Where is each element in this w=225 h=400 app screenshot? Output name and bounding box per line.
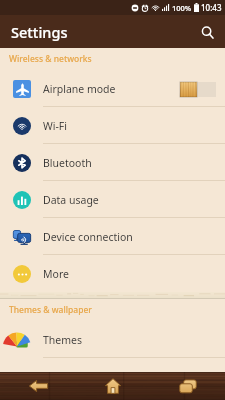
button[interactable]: Themes <box>0 321 225 358</box>
staticText: Themes & wallpaper <box>9 304 92 316</box>
button[interactable]: Data usage <box>0 181 225 218</box>
staticText: More <box>43 267 69 281</box>
staticText: Data usage <box>43 193 99 207</box>
staticText: Bluetooth <box>43 156 92 170</box>
staticText: Airplane mode <box>43 82 116 96</box>
button[interactable]: Home <box>88 372 138 400</box>
staticText: Wireless & networks <box>9 53 92 65</box>
button[interactable]: Airplane mode <box>0 70 225 107</box>
button[interactable]: Bluetooth <box>0 144 225 181</box>
button[interactable]: Device connection <box>0 218 225 255</box>
staticText: Device connection <box>43 230 133 244</box>
button[interactable]: Recent apps <box>163 372 213 400</box>
staticText: 10:43 <box>201 2 222 13</box>
button[interactable]: More <box>0 255 225 292</box>
button[interactable]: Airplane mode toggle <box>180 81 216 97</box>
staticText: Settings <box>11 22 68 42</box>
staticText: 100% <box>172 3 192 13</box>
button[interactable]: Search <box>193 18 221 46</box>
button[interactable]: Back <box>13 372 63 400</box>
staticText: Wi-Fi <box>43 119 68 133</box>
staticText: Themes <box>43 333 83 347</box>
button[interactable]: Wi-Fi <box>0 107 225 144</box>
